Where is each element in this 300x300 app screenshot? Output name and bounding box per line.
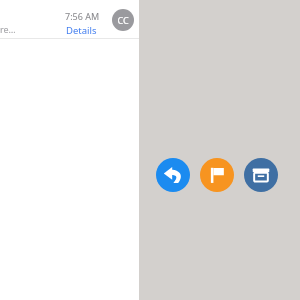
button[interactable]: Contact avatar CC	[112, 9, 134, 31]
staticText: Details	[66, 24, 97, 37]
staticText: re…	[0, 23, 16, 35]
button[interactable]: Reply	[156, 158, 190, 192]
staticText: 7:56 AM	[65, 10, 100, 22]
staticText: CC	[117, 14, 129, 26]
button[interactable]: Flag	[200, 158, 234, 192]
button[interactable]: Archive	[244, 158, 278, 192]
button[interactable]: Details	[66, 24, 97, 37]
